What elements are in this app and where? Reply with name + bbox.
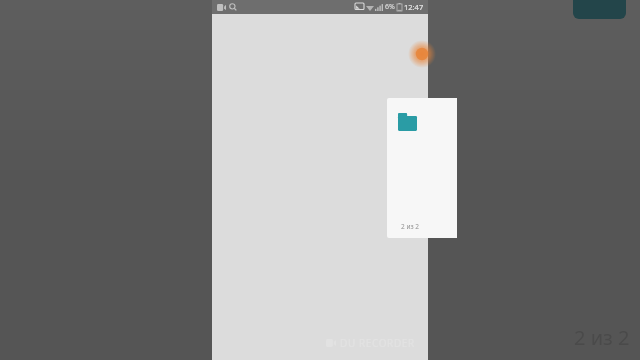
staticText: 12:47 xyxy=(404,2,424,12)
button[interactable]: Folder xyxy=(387,98,457,238)
staticText: 2 из 2 xyxy=(401,222,420,231)
staticText: 2 из 2 xyxy=(574,324,630,351)
other: Progress xyxy=(408,40,436,68)
staticText: 6% xyxy=(385,2,395,12)
other: Folder xyxy=(398,113,417,131)
